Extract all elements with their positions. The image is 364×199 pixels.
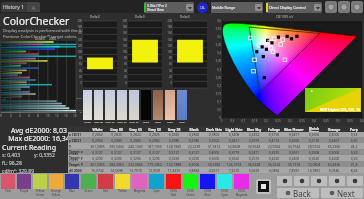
button[interactable]: y CIE31 bbox=[68, 137, 364, 143]
button[interactable] bbox=[94, 90, 103, 120]
staticText: 100% Blue bbox=[200, 189, 215, 197]
button[interactable]: Orange Yellow bbox=[49, 174, 63, 197]
button[interactable] bbox=[165, 90, 175, 120]
staticText: 0,3 bbox=[284, 119, 296, 123]
button[interactable]: Green bbox=[81, 174, 96, 197]
staticText: White bbox=[83, 120, 92, 124]
staticText: Target y CIE31 bbox=[69, 155, 88, 161]
button[interactable]: x CIE31 bbox=[68, 132, 364, 137]
staticText: Black bbox=[141, 120, 151, 124]
staticText: Black bbox=[184, 127, 204, 132]
button[interactable]: Stop measurement bbox=[256, 179, 271, 194]
staticText: 0,5 bbox=[208, 35, 221, 39]
staticText: 160 bbox=[166, 31, 172, 35]
staticText: 80 bbox=[76, 56, 82, 60]
staticText: 15,9732 bbox=[88, 168, 107, 173]
staticText: Purple bbox=[17, 189, 31, 197]
button[interactable]: Red bbox=[98, 174, 113, 197]
staticText: Avg dE2000: 8,03 bbox=[0, 126, 78, 136]
staticText: 180 bbox=[76, 25, 82, 29]
button[interactable]: Home bbox=[325, 1, 337, 13]
staticText: 10 bbox=[46, 114, 55, 118]
button[interactable]: New history bbox=[27, 2, 40, 12]
staticText: y: 0,5352 bbox=[34, 152, 55, 159]
staticText: 0,2982 bbox=[145, 138, 164, 143]
staticText: 0,2811 bbox=[284, 132, 304, 137]
staticText: 8 bbox=[37, 114, 46, 118]
button[interactable]: History 1 bbox=[1, 2, 40, 12]
staticText: 0,5 bbox=[208, 108, 221, 112]
staticText: 0,4005 bbox=[324, 132, 344, 137]
staticText: 35,2534 bbox=[264, 162, 284, 167]
staticText: 20 bbox=[166, 75, 172, 79]
button[interactable]: 100% Magenta bbox=[234, 174, 249, 197]
staticText: 2 bbox=[10, 114, 19, 118]
button[interactable]: Help bbox=[338, 1, 350, 13]
button[interactable]: Next bbox=[321, 188, 363, 198]
button[interactable]: 100% Green bbox=[183, 174, 198, 197]
staticText: 0 bbox=[121, 81, 127, 85]
button[interactable]: 100% Cyan bbox=[217, 174, 232, 197]
staticText: 40 bbox=[166, 69, 172, 73]
staticText: 0,25 bbox=[272, 119, 284, 123]
button[interactable]: 100% Red bbox=[166, 174, 181, 197]
button[interactable]: Record bbox=[277, 176, 292, 186]
button[interactable]: 100% Blue bbox=[200, 174, 215, 197]
staticText: 0,2862 bbox=[88, 132, 107, 137]
button[interactable]: Y bbox=[68, 143, 364, 149]
staticText: 0,3127 bbox=[126, 150, 145, 155]
staticText: 0,45 bbox=[208, 43, 221, 47]
button[interactable]: Target Y bbox=[68, 161, 364, 167]
staticText: CIE 1976 u'v' bbox=[276, 15, 294, 19]
staticText: Blue Sky bbox=[244, 127, 264, 132]
button[interactable]: Target y CIE31 bbox=[68, 155, 364, 161]
staticText: 120 bbox=[121, 44, 127, 48]
staticText: 361,5805 bbox=[88, 144, 107, 149]
button[interactable]: Purple bbox=[17, 174, 31, 197]
button[interactable]: Yellow Green bbox=[33, 174, 47, 197]
button[interactable]: Save bbox=[311, 176, 327, 186]
button[interactable]: Mobile Range bbox=[211, 2, 263, 13]
staticText: 0,3127 bbox=[88, 150, 107, 155]
button[interactable]: Back bbox=[277, 188, 319, 198]
staticText: 0,35 bbox=[208, 59, 221, 63]
staticText: cd/m²: 329,89 bbox=[2, 168, 35, 175]
button[interactable]: Options bbox=[351, 1, 363, 13]
button[interactable] bbox=[177, 90, 187, 120]
button[interactable]: Pink bbox=[1, 174, 15, 197]
staticText: 0,3773 bbox=[224, 150, 244, 155]
staticText: 0,3127 bbox=[145, 150, 164, 155]
button[interactable]: Settings bbox=[329, 176, 345, 186]
button[interactable] bbox=[105, 90, 115, 120]
staticText: 0,2471 bbox=[244, 150, 264, 155]
button[interactable]: X-Rite i1Pro 2 Direct View bbox=[144, 2, 194, 13]
button[interactable] bbox=[129, 90, 139, 120]
staticText: Orange Yellow bbox=[49, 189, 63, 197]
staticText: 0,2 bbox=[208, 84, 221, 88]
button[interactable]: Direct Display Control bbox=[266, 2, 322, 13]
staticText: 30,2382 bbox=[204, 162, 224, 167]
staticText: 16 bbox=[73, 114, 78, 118]
button[interactable] bbox=[153, 90, 163, 120]
staticText: 0,3290 bbox=[145, 156, 164, 161]
staticText: 0,3127 bbox=[184, 150, 204, 155]
button[interactable]: Cyan bbox=[149, 174, 164, 197]
button[interactable] bbox=[117, 90, 127, 120]
button[interactable] bbox=[83, 90, 92, 120]
staticText: 0,3127 bbox=[164, 150, 184, 155]
staticText: 0,2919 bbox=[244, 138, 264, 143]
button[interactable]: Play bbox=[294, 176, 309, 186]
button[interactable]: Magenta bbox=[132, 174, 147, 197]
staticText: History 1 bbox=[3, 4, 24, 11]
staticText: 140 bbox=[76, 38, 82, 42]
button[interactable]: dE 2000 bbox=[68, 167, 364, 173]
button[interactable]: Blue bbox=[65, 174, 79, 197]
button[interactable]: Yellow bbox=[115, 174, 130, 197]
button[interactable]: Target x CIE31 bbox=[68, 149, 364, 155]
button[interactable]: Delete bbox=[347, 176, 363, 186]
staticText: 35,7318 bbox=[284, 162, 304, 167]
staticText: 24,2 bbox=[344, 144, 364, 149]
staticText: 0,2954 bbox=[88, 138, 107, 143]
button[interactable]: Calibrate bbox=[197, 2, 208, 13]
